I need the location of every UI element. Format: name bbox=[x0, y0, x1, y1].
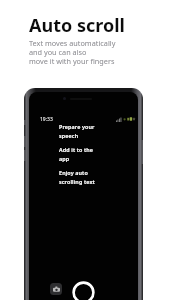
staticText: 19:33 bbox=[40, 116, 53, 123]
staticText: Text moves automatically and you can als… bbox=[29, 38, 116, 66]
staticText: Add it to the app bbox=[59, 146, 94, 162]
staticText: Auto scroll bbox=[29, 13, 125, 38]
staticText: Enjoy auto scrolling text bbox=[59, 169, 95, 185]
button[interactable]: Gallery bbox=[50, 283, 62, 295]
staticText: Prepare your speech bbox=[59, 123, 95, 139]
button[interactable]: Shutter bbox=[72, 281, 95, 300]
